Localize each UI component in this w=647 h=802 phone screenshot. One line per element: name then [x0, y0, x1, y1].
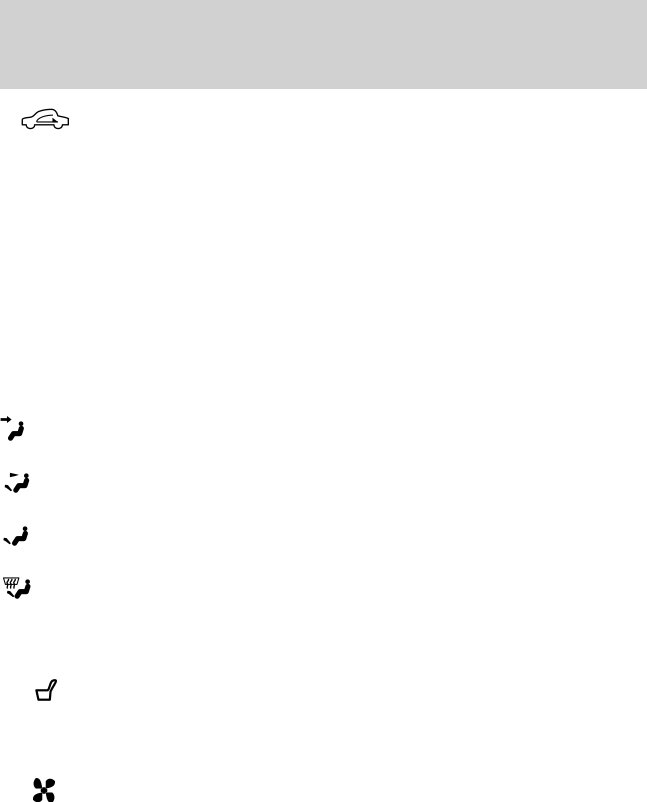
button[interactable]: Floor vents: [0, 508, 647, 561]
button[interactable]: Air recirculation: [10, 96, 80, 140]
button[interactable]: Defrost and floor vents: [0, 561, 647, 614]
button[interactable]: Face vents: [0, 402, 647, 455]
button[interactable]: Seat heater: [13, 667, 81, 713]
button[interactable]: Face and floor vents: [0, 455, 647, 508]
button[interactable]: Fan speed: [11, 767, 77, 802]
